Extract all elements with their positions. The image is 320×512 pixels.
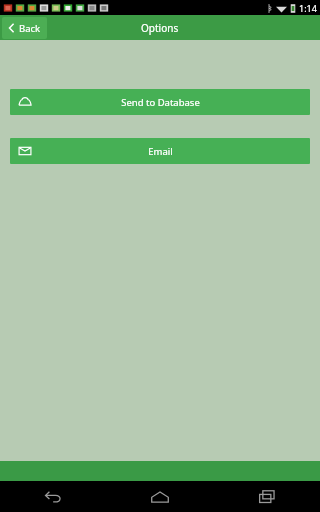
staticText: 1:14 [299,2,317,14]
staticText: Send to Database [121,96,200,109]
staticText: Options [141,21,179,35]
button[interactable]: Home [106,481,213,512]
button[interactable]: Back [0,481,106,512]
staticText: Back [19,22,41,35]
button[interactable]: Recent apps [213,481,320,512]
staticText: Email [148,145,173,158]
button[interactable]: Send to Database [10,89,310,115]
button[interactable]: Email [10,138,310,164]
button[interactable]: Back [2,17,47,39]
